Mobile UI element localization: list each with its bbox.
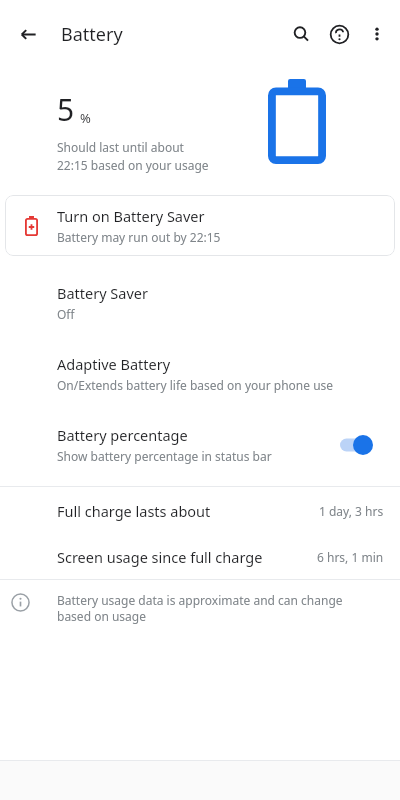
staticText: Battery may run out by 22:15 — [57, 229, 221, 245]
staticText: Off — [57, 306, 75, 322]
button[interactable]: Battery Saver — [0, 273, 400, 332]
staticText: Turn on Battery Saver — [57, 206, 205, 226]
staticText: Battery Saver — [57, 283, 148, 303]
staticText: Battery percentage — [57, 425, 188, 445]
button[interactable]: Turn on Battery Saver — [5, 195, 395, 256]
staticText: 22:15 based on your usage — [57, 157, 209, 173]
staticText: Battery — [61, 22, 123, 47]
staticText: 1 day, 3 hrs — [319, 503, 384, 519]
staticText: % — [80, 109, 91, 127]
button[interactable]: Battery percentage — [0, 415, 400, 474]
staticText: On/Extends battery life based on your ph… — [57, 377, 334, 393]
staticText: Should last until about — [57, 139, 184, 155]
staticText: Battery usage data is approximate and ca… — [57, 592, 376, 624]
button[interactable]: Help — [320, 15, 358, 53]
staticText: Adaptive Battery — [57, 354, 171, 374]
button[interactable]: Adaptive Battery — [0, 344, 400, 403]
staticText: Show battery percentage in status bar — [57, 448, 272, 464]
staticText: 6 hrs, 1 min — [317, 549, 384, 565]
button[interactable]: Battery percentage toggle — [338, 431, 384, 459]
button[interactable]: Full charge lasts about — [0, 487, 400, 535]
staticText: Full charge lasts about — [57, 501, 319, 521]
staticText: 5 — [57, 89, 75, 130]
button[interactable]: Back — [8, 14, 48, 54]
button[interactable]: Screen usage since full charge — [0, 535, 400, 579]
button[interactable]: Search — [282, 15, 320, 53]
staticText: Screen usage since full charge — [57, 547, 317, 567]
button[interactable]: More options — [358, 15, 396, 53]
